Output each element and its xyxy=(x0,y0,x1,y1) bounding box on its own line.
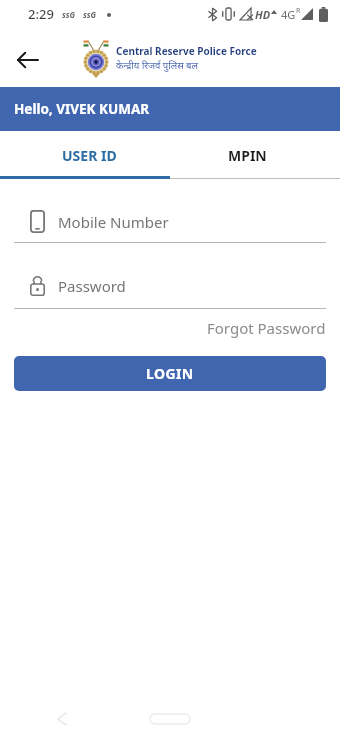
staticText: Hello, VIVEK KUMAR xyxy=(14,100,150,118)
staticText: ssG xyxy=(83,9,97,20)
button[interactable]: MPIN xyxy=(170,131,340,179)
staticText: Central Reserve Police Force xyxy=(116,44,257,58)
button[interactable]: USER ID xyxy=(0,131,170,179)
button[interactable]: Mobile Number xyxy=(14,210,326,233)
staticText: USER ID xyxy=(62,146,117,165)
button[interactable] xyxy=(18,52,38,68)
button[interactable]: Forgot Password xyxy=(207,318,326,338)
button[interactable]: LOGIN xyxy=(14,356,326,391)
staticText: 2:29 xyxy=(28,5,54,23)
staticText: 4G xyxy=(281,7,296,22)
staticText: ssG xyxy=(62,9,76,20)
staticText: केन्द्रीय रिजर्व पुलिस बल xyxy=(116,59,198,72)
staticText: R xyxy=(296,6,301,16)
button[interactable]: Password xyxy=(14,276,326,296)
staticText: Mobile Number xyxy=(58,212,169,232)
staticText: Password xyxy=(58,276,126,296)
staticText: MPIN xyxy=(228,146,267,165)
staticText: HD xyxy=(255,7,271,22)
staticText: LOGIN xyxy=(146,364,194,383)
